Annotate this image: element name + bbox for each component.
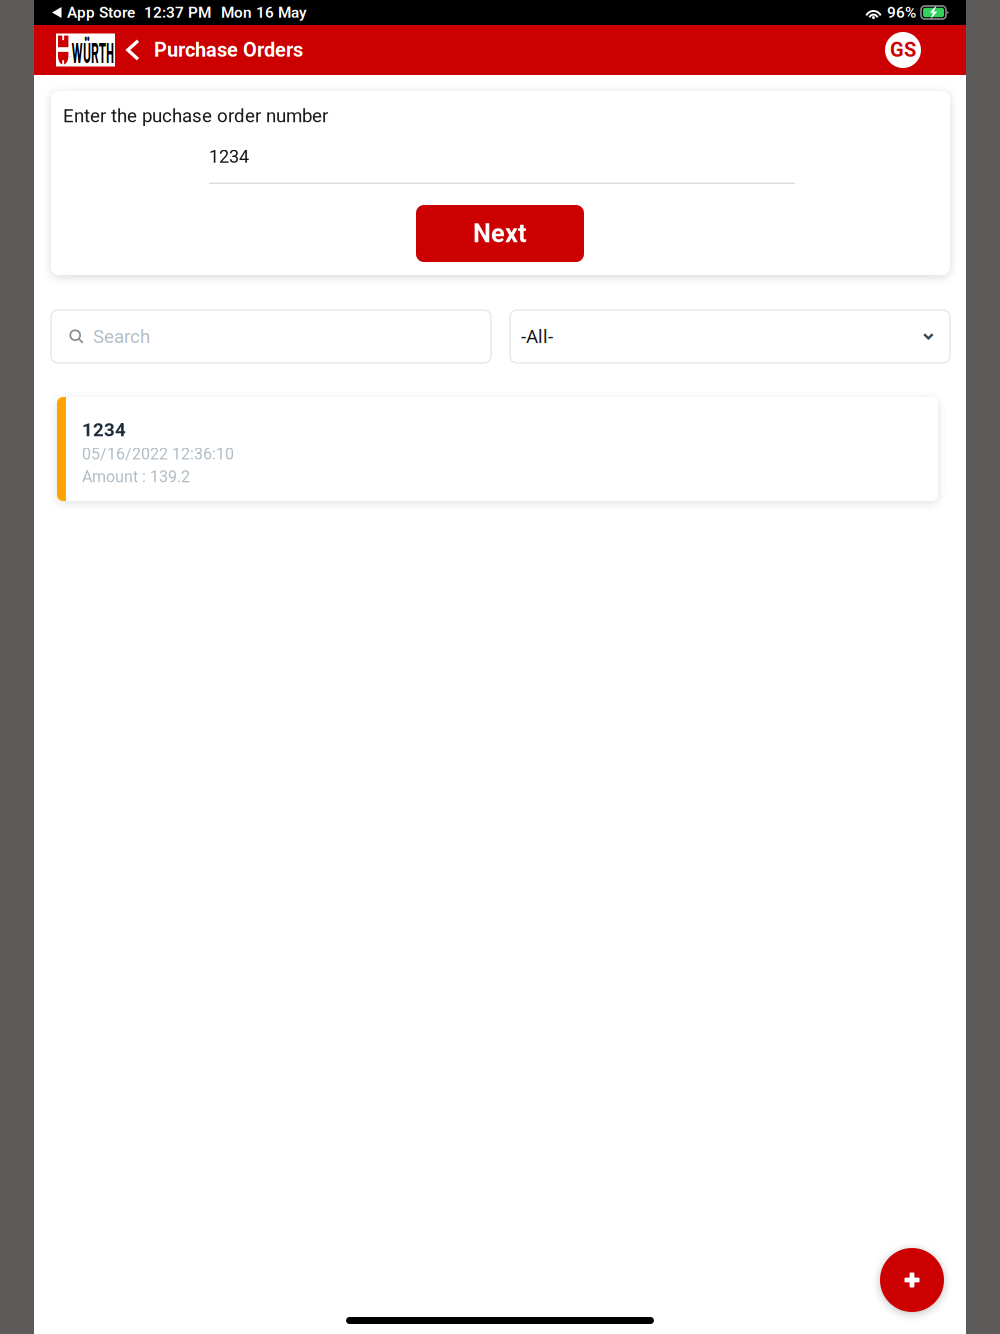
staticText: GS (890, 38, 916, 62)
staticText: Amount : 139.2 (82, 467, 190, 486)
staticText: Enter the puchase order number (63, 105, 328, 127)
button[interactable]: Purchase order number (209, 146, 795, 184)
button[interactable]: Search (51, 310, 491, 363)
button[interactable]: Back (115, 25, 144, 75)
staticText: -All- (521, 326, 553, 347)
staticText: Purchase Orders (154, 38, 303, 62)
staticText: 05/16/2022 12:36:10 (82, 445, 234, 463)
staticText: App Store (67, 3, 135, 21)
staticText: 1234 (82, 419, 126, 441)
staticText: Next (473, 219, 527, 248)
staticText: WÜRTH (71, 35, 165, 69)
button[interactable]: Next (416, 205, 584, 262)
staticText: Search (93, 326, 150, 347)
staticText: 96% (887, 3, 916, 21)
staticText: 12:37 PM (144, 3, 211, 21)
button[interactable]: 1234 (57, 397, 938, 501)
staticText: Mon 16 May (221, 3, 307, 21)
button[interactable]: Account (885, 32, 921, 68)
staticText: 1234 (209, 146, 249, 167)
button[interactable]: -All- (510, 310, 950, 363)
button[interactable]: Add purchase order (880, 1248, 944, 1312)
